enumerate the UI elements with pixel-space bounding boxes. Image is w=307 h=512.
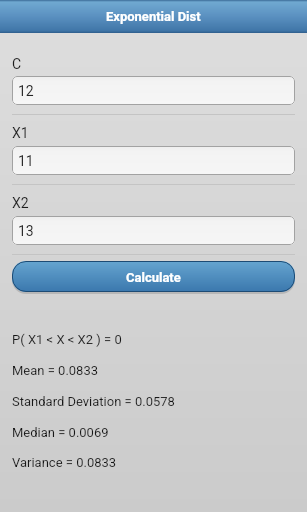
button[interactable]: 13 (12, 216, 295, 245)
staticText: 11 (18, 153, 34, 169)
staticText: Variance = 0.0833 (12, 455, 117, 470)
button[interactable]: 11 (12, 146, 295, 175)
staticText: Mean = 0.0833 (12, 363, 99, 378)
staticText: Standard Deviation = 0.0578 (12, 394, 175, 409)
staticText: 12 (18, 83, 34, 99)
staticText: Calculate (126, 270, 181, 285)
staticText: C (12, 56, 22, 72)
staticText: P( X1 < X < X2 ) = 0 (12, 332, 122, 347)
staticText: X2 (12, 195, 29, 211)
button[interactable]: Calculate (12, 261, 295, 292)
staticText: X1 (12, 125, 29, 141)
button[interactable]: 12 (12, 76, 295, 105)
staticText: Exponential Dist (106, 9, 201, 24)
staticText: Median = 0.0069 (12, 425, 109, 440)
staticText: 13 (18, 223, 34, 239)
